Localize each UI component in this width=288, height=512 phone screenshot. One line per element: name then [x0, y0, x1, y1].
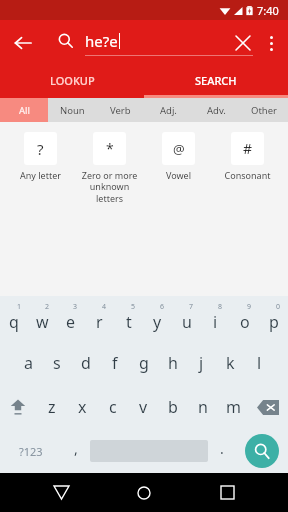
button[interactable]: f — [100, 341, 129, 385]
button[interactable]: 0 — [259, 296, 288, 341]
button[interactable]: n — [188, 385, 218, 429]
staticText: c — [109, 396, 117, 418]
staticText: x — [78, 396, 87, 418]
staticText: ?123 — [19, 444, 43, 459]
staticText: 7 — [189, 302, 194, 312]
button[interactable]: a — [14, 341, 42, 385]
button[interactable]: Other — [240, 98, 288, 122]
button[interactable]: @ — [146, 132, 211, 181]
button[interactable]: s — [42, 341, 71, 385]
staticText: 4 — [102, 302, 107, 312]
staticText: Zero or more unknown letters — [77, 169, 142, 205]
button[interactable]: v — [128, 385, 158, 429]
staticText: * — [106, 139, 114, 158]
button[interactable]: Back — [6, 26, 40, 60]
button[interactable]: Noun — [48, 98, 96, 122]
button[interactable]: 3 — [56, 296, 85, 341]
button[interactable]: 5 — [114, 296, 143, 341]
button[interactable]: 2 — [28, 296, 56, 341]
button[interactable]: h — [158, 341, 187, 385]
staticText: , — [74, 439, 78, 458]
button[interactable]: , — [62, 429, 90, 473]
button[interactable]: k — [216, 341, 245, 385]
staticText: # — [243, 139, 253, 158]
button[interactable]: z — [36, 385, 67, 429]
staticText: 9 — [247, 302, 252, 312]
staticText: 1 — [17, 302, 22, 312]
staticText: . — [220, 439, 224, 458]
staticText: s — [53, 352, 61, 374]
staticText: g — [139, 352, 149, 374]
staticText: a — [24, 352, 33, 374]
staticText: 7:40 — [257, 3, 279, 18]
staticText: h — [168, 352, 178, 374]
staticText: b — [168, 396, 178, 418]
staticText: 2 — [45, 302, 50, 312]
staticText: y — [153, 311, 162, 333]
staticText: Adv. — [207, 104, 226, 117]
staticText: All — [19, 104, 30, 117]
button[interactable]: ?123 — [0, 429, 62, 473]
staticText: he?e — [85, 31, 118, 51]
button[interactable]: x — [67, 385, 98, 429]
button[interactable]: m — [218, 385, 248, 429]
staticText: r — [96, 311, 103, 333]
staticText: m — [226, 396, 241, 418]
button[interactable]: Search — [236, 429, 288, 473]
button[interactable]: b — [158, 385, 188, 429]
staticText: 3 — [73, 302, 78, 312]
staticText: d — [81, 352, 91, 374]
staticText: k — [226, 352, 235, 374]
button[interactable]: ? — [8, 132, 73, 181]
staticText: f — [112, 352, 118, 374]
button[interactable]: 8 — [201, 296, 230, 341]
button[interactable]: 7 — [172, 296, 201, 341]
staticText: 0 — [276, 302, 281, 312]
button[interactable]: LOOKUP — [0, 65, 144, 95]
button[interactable]: l — [245, 341, 274, 385]
staticText: Adj. — [160, 104, 177, 117]
button[interactable]: 6 — [143, 296, 172, 341]
button[interactable]: . — [208, 429, 236, 473]
button[interactable]: Recents — [205, 473, 249, 512]
staticText: Any letter — [8, 169, 73, 181]
button[interactable]: Backspace — [248, 385, 288, 429]
staticText: Verb — [110, 104, 131, 117]
staticText: Noun — [60, 104, 85, 117]
staticText: u — [182, 311, 192, 333]
button[interactable]: Back — [39, 473, 83, 512]
staticText: w — [36, 311, 49, 333]
button[interactable]: 1 — [0, 296, 28, 341]
staticText: n — [198, 396, 208, 418]
staticText: v — [139, 396, 148, 418]
button[interactable]: More options — [257, 29, 285, 57]
staticText: @ — [173, 140, 185, 158]
button[interactable]: Clear — [228, 28, 258, 58]
button[interactable]: c — [98, 385, 128, 429]
staticText: p — [269, 311, 279, 333]
staticText: 6 — [160, 302, 165, 312]
button[interactable]: g — [129, 341, 158, 385]
button[interactable]: * — [77, 132, 142, 205]
staticText: q — [9, 311, 19, 333]
button[interactable]: d — [71, 341, 100, 385]
staticText: z — [48, 396, 56, 418]
button[interactable]: Home — [122, 473, 166, 512]
button[interactable]: Shift — [0, 385, 36, 429]
staticText: Consonant — [215, 169, 280, 181]
button[interactable]: 9 — [230, 296, 259, 341]
button[interactable]: # — [215, 132, 280, 181]
staticText: 5 — [131, 302, 136, 312]
staticText: LOOKUP — [50, 73, 95, 88]
staticText: l — [257, 352, 262, 374]
button[interactable]: Adv. — [192, 98, 240, 122]
button[interactable]: j — [187, 341, 216, 385]
button[interactable]: All — [0, 98, 48, 122]
button[interactable]: Adj. — [144, 98, 192, 122]
button[interactable]: 4 — [85, 296, 114, 341]
staticText: i — [213, 311, 218, 333]
button[interactable]: SEARCH — [144, 65, 288, 95]
staticText: o — [240, 311, 250, 333]
button[interactable]: Verb — [96, 98, 144, 122]
